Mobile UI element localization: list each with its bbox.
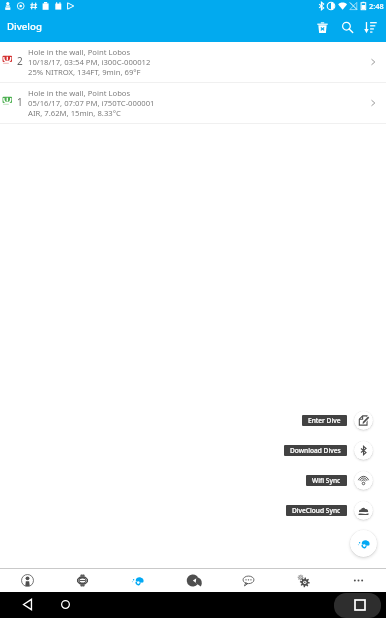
staticText: 2 bbox=[17, 54, 26, 68]
button[interactable]: Delete bbox=[310, 15, 335, 40]
staticText: DiveCloud Sync bbox=[292, 506, 341, 515]
button[interactable]: Wifi Sync bbox=[354, 471, 373, 490]
staticText: 25% NITROX, 134FT, 9min, 69°F bbox=[28, 67, 141, 77]
staticText: AIR, 7.62M, 15min, 8.33°C bbox=[28, 108, 121, 118]
button[interactable]: Back bbox=[15, 592, 40, 617]
button[interactable]: Sort bbox=[358, 15, 383, 40]
button[interactable]: Messages bbox=[221, 569, 276, 592]
staticText: 05/16/17, 07:07 PM, i750TC-000001 bbox=[28, 98, 155, 108]
button[interactable]: Dives bbox=[110, 569, 165, 592]
button[interactable]: Settings bbox=[276, 569, 331, 592]
button[interactable]: Search bbox=[335, 15, 360, 40]
button[interactable]: 1 bbox=[0, 83, 386, 123]
staticText: 1 bbox=[17, 95, 26, 109]
staticText: Wifi Sync bbox=[312, 476, 341, 485]
staticText: Divelog bbox=[7, 20, 42, 33]
button[interactable]: More bbox=[331, 569, 386, 592]
button[interactable]: Wifi Sync bbox=[306, 475, 347, 486]
button[interactable]: DiveCloud Sync bbox=[354, 501, 373, 520]
button[interactable]: Enter Dive bbox=[354, 411, 373, 430]
button[interactable]: Profile bbox=[0, 569, 55, 592]
staticText: Hole in the wall, Point Lobos bbox=[28, 47, 131, 57]
button[interactable]: 2 bbox=[0, 42, 386, 82]
staticText: Enter Dive bbox=[308, 416, 341, 425]
button[interactable]: Overview bbox=[347, 592, 372, 617]
button[interactable]: Recents bbox=[334, 593, 381, 618]
button[interactable]: Gear bbox=[55, 569, 110, 592]
staticText: Download Dives bbox=[290, 446, 341, 455]
staticText: 10/18/17, 03:54 PM, i300C-000012 bbox=[28, 57, 151, 67]
staticText: 2:48 bbox=[369, 1, 384, 11]
button[interactable]: Home bbox=[53, 592, 78, 617]
button[interactable]: Enter Dive bbox=[302, 415, 347, 426]
button[interactable]: Download Dives bbox=[284, 445, 347, 456]
button[interactable]: Statistics bbox=[166, 569, 221, 592]
button[interactable]: Download Dives bbox=[354, 441, 373, 460]
button[interactable]: DiveCloud Sync bbox=[286, 505, 347, 516]
button[interactable]: Add dive bbox=[350, 530, 377, 557]
staticText: Hole in the wall, Point Lobos bbox=[28, 88, 131, 98]
